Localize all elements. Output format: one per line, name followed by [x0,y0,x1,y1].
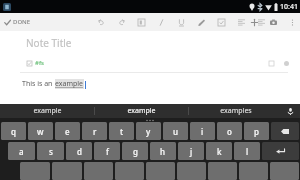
staticText: 10:41 [280,2,298,12]
button[interactable]: #fs [26,58,45,68]
button[interactable]: Camera [268,17,279,28]
button[interactable]: Delete [265,57,277,69]
staticText: example [55,79,84,89]
staticText: This is an [22,79,55,89]
staticText: p [254,126,259,137]
button[interactable]: y [136,122,161,140]
staticText: w [37,126,44,137]
button[interactable]: Redo [116,17,127,28]
button[interactable]: h [150,142,176,160]
staticText: examples [220,106,252,116]
button[interactable]: Undo [96,17,107,28]
button[interactable]: example [0,104,94,118]
button[interactable]: Key [208,162,237,180]
staticText: a [19,146,24,157]
button[interactable]: Key [20,162,50,180]
button[interactable]: More options [287,17,298,28]
staticText: l [246,146,249,157]
staticText: r [93,126,97,137]
button[interactable]: Key [52,162,82,180]
staticText: s [49,146,53,157]
staticText: j [190,146,193,157]
button[interactable]: t [109,122,134,140]
button[interactable]: Add [249,17,260,28]
button[interactable]: p [244,122,269,140]
button[interactable]: Voice input [284,105,296,117]
staticText: i [201,126,204,137]
button[interactable]: Bold [136,17,147,28]
button[interactable]: Underline [176,17,187,28]
button[interactable]: DONE [0,16,35,28]
button[interactable]: Checklist [216,17,227,28]
staticText: d [77,146,82,157]
button[interactable]: Key [177,162,206,180]
staticText: Note Title [26,36,72,50]
button[interactable]: Highlight [196,17,207,28]
button[interactable]: Key [146,162,175,180]
button[interactable]: j [178,142,204,160]
staticText: u [173,126,179,137]
button[interactable]: Key [115,162,144,180]
staticText: #fs [35,59,44,67]
button[interactable]: l [234,142,260,160]
staticText: q [11,126,16,137]
button[interactable]: e [55,122,80,140]
button[interactable]: f [94,142,120,160]
staticText: k [217,146,222,157]
button[interactable]: Italic [156,17,167,28]
button[interactable]: g [122,142,148,160]
staticText: f [106,146,109,157]
button[interactable]: Enter [262,142,299,160]
button[interactable]: Key [239,162,268,180]
staticText: t [120,126,124,137]
staticText: example [33,106,62,116]
button[interactable]: r [82,122,107,140]
staticText: g [133,146,138,157]
staticText: example [127,106,156,116]
button[interactable]: Align right [256,17,267,28]
button[interactable]: example [95,104,188,118]
button[interactable]: d [66,142,92,160]
button[interactable]: o [217,122,242,140]
button[interactable]: w [28,122,53,140]
button[interactable]: Backspace [271,122,299,140]
button[interactable]: k [206,142,232,160]
button[interactable]: i [190,122,215,140]
staticText: o [227,126,232,137]
staticText: y [146,126,151,137]
button[interactable]: examples [189,104,282,118]
button[interactable]: Key [84,162,113,180]
button[interactable]: Key [270,162,299,180]
button[interactable]: Align left [236,17,247,28]
button[interactable]: Info [280,57,292,69]
button[interactable]: u [163,122,188,140]
button[interactable]: s [37,142,64,160]
staticText: DONE [13,18,31,26]
button[interactable]: a [8,142,35,160]
button[interactable]: q [1,122,26,140]
staticText: h [160,146,166,157]
staticText: e [65,126,70,137]
